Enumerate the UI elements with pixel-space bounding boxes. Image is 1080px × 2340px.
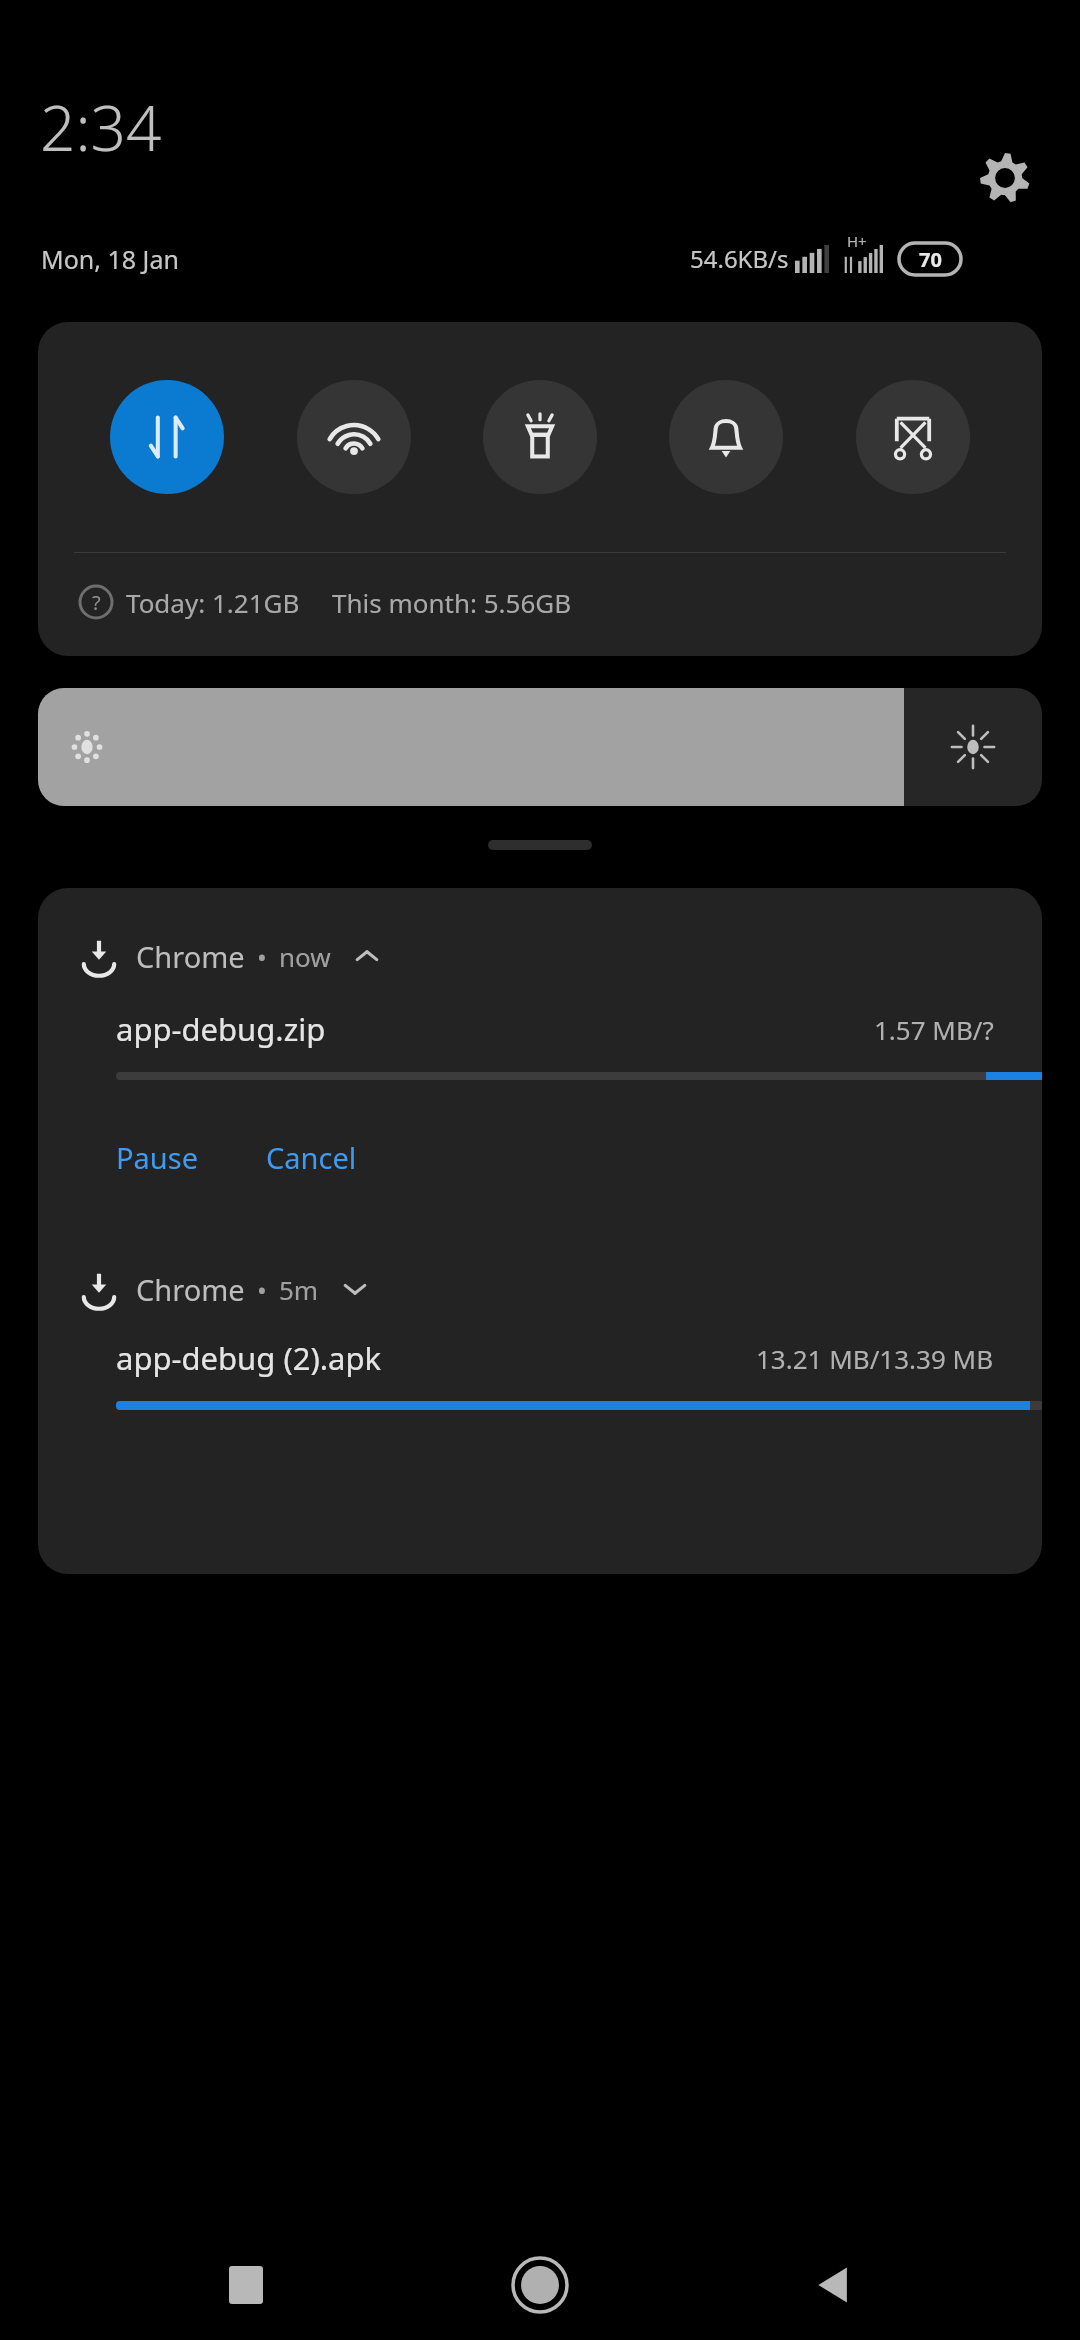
button[interactable]: Cancel xyxy=(240,1126,383,1189)
staticText: 2:34 xyxy=(40,85,162,169)
button[interactable]: Mobile data xyxy=(110,380,224,494)
staticText: This month: 5.56GB xyxy=(332,585,572,620)
button[interactable]: Brightness xyxy=(38,688,1042,806)
button[interactable]: Expand xyxy=(335,1269,375,1309)
staticText: app-debug (2).apk xyxy=(116,1337,382,1379)
staticText: Mon, 18 Jan xyxy=(41,242,179,276)
button[interactable]: Flashlight xyxy=(483,380,597,494)
staticText: Chrome xyxy=(136,1270,245,1309)
staticText: Pause xyxy=(116,1138,198,1177)
button[interactable]: ? xyxy=(78,584,572,620)
staticText: Today: 1.21GB xyxy=(126,585,300,620)
button[interactable]: Recents xyxy=(198,2237,294,2333)
staticText: H+ xyxy=(847,231,867,251)
staticText: now xyxy=(279,939,331,974)
staticText: • xyxy=(257,1272,267,1307)
staticText: • xyxy=(257,939,267,974)
button[interactable]: Back xyxy=(786,2237,882,2333)
staticText: 70 xyxy=(919,246,942,273)
button[interactable]: Home xyxy=(492,2237,588,2333)
staticText: Chrome xyxy=(136,937,245,976)
staticText: 1.57 MB/? xyxy=(874,1012,994,1047)
staticText: 5m xyxy=(279,1272,319,1307)
button[interactable]: Chrome xyxy=(38,888,1042,1041)
button[interactable]: Wi-Fi xyxy=(297,380,411,494)
button[interactable]: Screenshot xyxy=(856,380,970,494)
staticText: app-debug.zip xyxy=(116,1008,326,1050)
staticText: 13.21 MB/13.39 MB xyxy=(756,1341,994,1376)
staticText: Cancel xyxy=(266,1138,357,1177)
button[interactable]: Collapse xyxy=(347,936,387,976)
staticText: ? xyxy=(92,589,101,616)
button[interactable]: Chrome xyxy=(38,1269,1042,1360)
button[interactable]: Notifications xyxy=(669,380,783,494)
staticText: 54.6KB/s xyxy=(690,242,789,275)
button[interactable]: Pause xyxy=(90,1126,224,1189)
button[interactable]: Settings xyxy=(973,146,1037,210)
